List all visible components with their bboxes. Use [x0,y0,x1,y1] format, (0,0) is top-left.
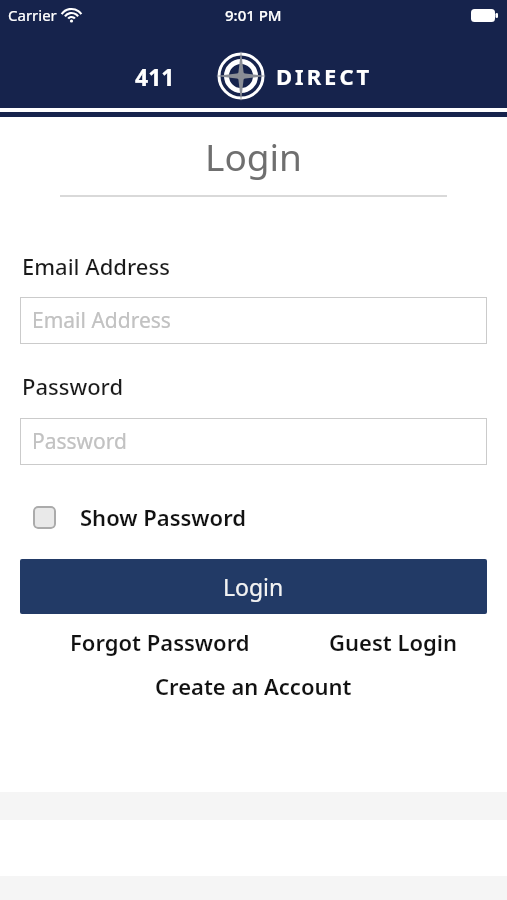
button[interactable]: Create an Account [155,671,352,701]
button[interactable]: Forgot Password [70,627,250,657]
staticText: Email Address [32,306,171,335]
staticText: 9:01 PM [225,5,282,25]
button[interactable]: Show Password [33,502,247,532]
staticText: Show Password [80,502,247,532]
button[interactable]: Email Address [20,297,487,344]
staticText: 411 [135,61,175,92]
staticText: Password [32,427,127,456]
button[interactable]: Password [20,418,487,465]
staticText: DIRECT [276,61,373,91]
staticText: Email Address [22,251,170,281]
button[interactable]: Guest Login [329,627,457,657]
button[interactable]: Login [20,559,487,614]
staticText: Login [223,571,284,602]
staticText: Carrier [8,5,57,25]
staticText: Password [22,371,124,401]
staticText: Login [0,131,507,181]
